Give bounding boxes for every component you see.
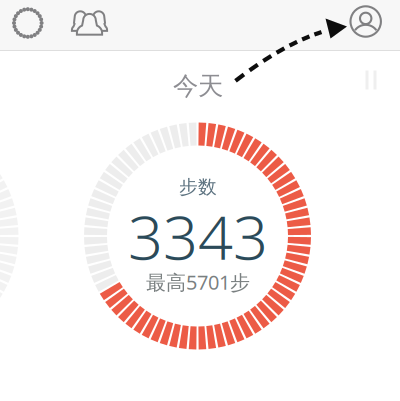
- staticText: 今天: [173, 70, 223, 101]
- button[interactable]: Friends: [56, 0, 116, 50]
- staticText: 3343: [128, 195, 268, 277]
- button[interactable]: Profile: [338, 0, 400, 50]
- staticText: 最高5701步: [146, 269, 250, 295]
- staticText: 步数: [179, 175, 217, 198]
- button[interactable]: Activity: [0, 0, 56, 50]
